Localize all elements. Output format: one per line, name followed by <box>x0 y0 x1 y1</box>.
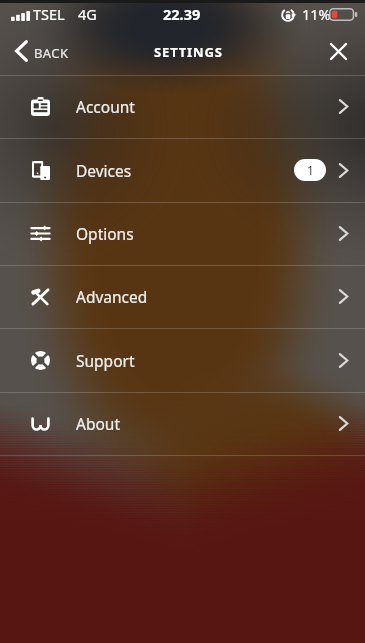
staticText: 22.39 <box>163 4 201 24</box>
button[interactable]: Support <box>0 328 365 392</box>
staticText: BACK <box>34 44 69 62</box>
button[interactable]: Account <box>0 75 365 138</box>
button[interactable]: Close <box>320 31 365 75</box>
staticText: TSEL <box>33 4 65 24</box>
button[interactable]: About <box>0 392 365 455</box>
staticText: 11% <box>302 4 331 24</box>
staticText: 1 <box>307 162 314 178</box>
button[interactable]: BACK <box>4 31 79 75</box>
staticText: SETTINGS <box>154 43 223 61</box>
staticText: Advanced <box>76 286 148 307</box>
staticText: Devices <box>76 160 132 181</box>
button[interactable]: Devices <box>0 138 365 202</box>
staticText: 4G <box>78 4 97 24</box>
button[interactable]: Options <box>0 202 365 265</box>
staticText: Account <box>76 96 135 117</box>
button[interactable]: Advanced <box>0 265 365 328</box>
staticText: Options <box>76 223 134 244</box>
staticText: Support <box>76 350 135 371</box>
staticText: About <box>76 413 120 434</box>
